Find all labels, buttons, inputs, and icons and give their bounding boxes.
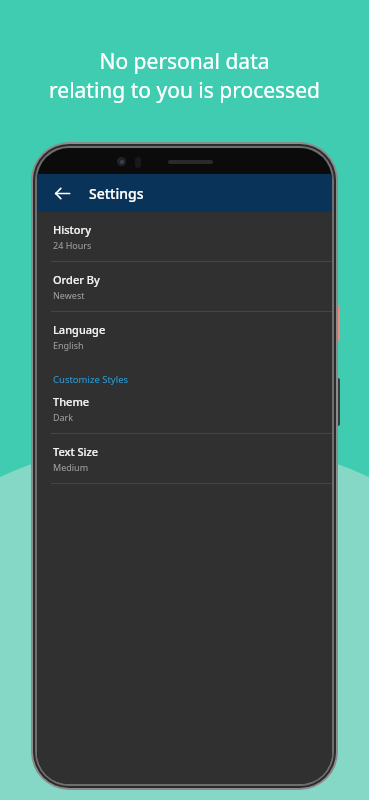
button[interactable]: Order By <box>37 262 332 311</box>
staticText: Customize Styles <box>53 373 129 386</box>
staticText: 24 Hours <box>53 239 92 251</box>
staticText: Dark <box>53 411 74 423</box>
staticText: Settings <box>89 184 144 203</box>
staticText: English <box>53 339 84 351</box>
button[interactable]: Back <box>47 178 77 208</box>
staticText: Text Size <box>53 444 99 459</box>
staticText: Medium <box>53 461 89 473</box>
staticText: relating to you is processed <box>49 76 320 105</box>
staticText: Order By <box>53 272 100 287</box>
button[interactable]: Text Size <box>37 434 332 483</box>
staticText: Language <box>53 322 106 337</box>
button[interactable]: Language <box>37 312 332 361</box>
staticText: Newest <box>53 289 85 301</box>
staticText: Theme <box>53 394 90 409</box>
button[interactable]: History <box>37 212 332 261</box>
staticText: No personal data <box>99 47 270 76</box>
staticText: History <box>53 222 91 237</box>
button[interactable]: Theme <box>37 388 332 433</box>
